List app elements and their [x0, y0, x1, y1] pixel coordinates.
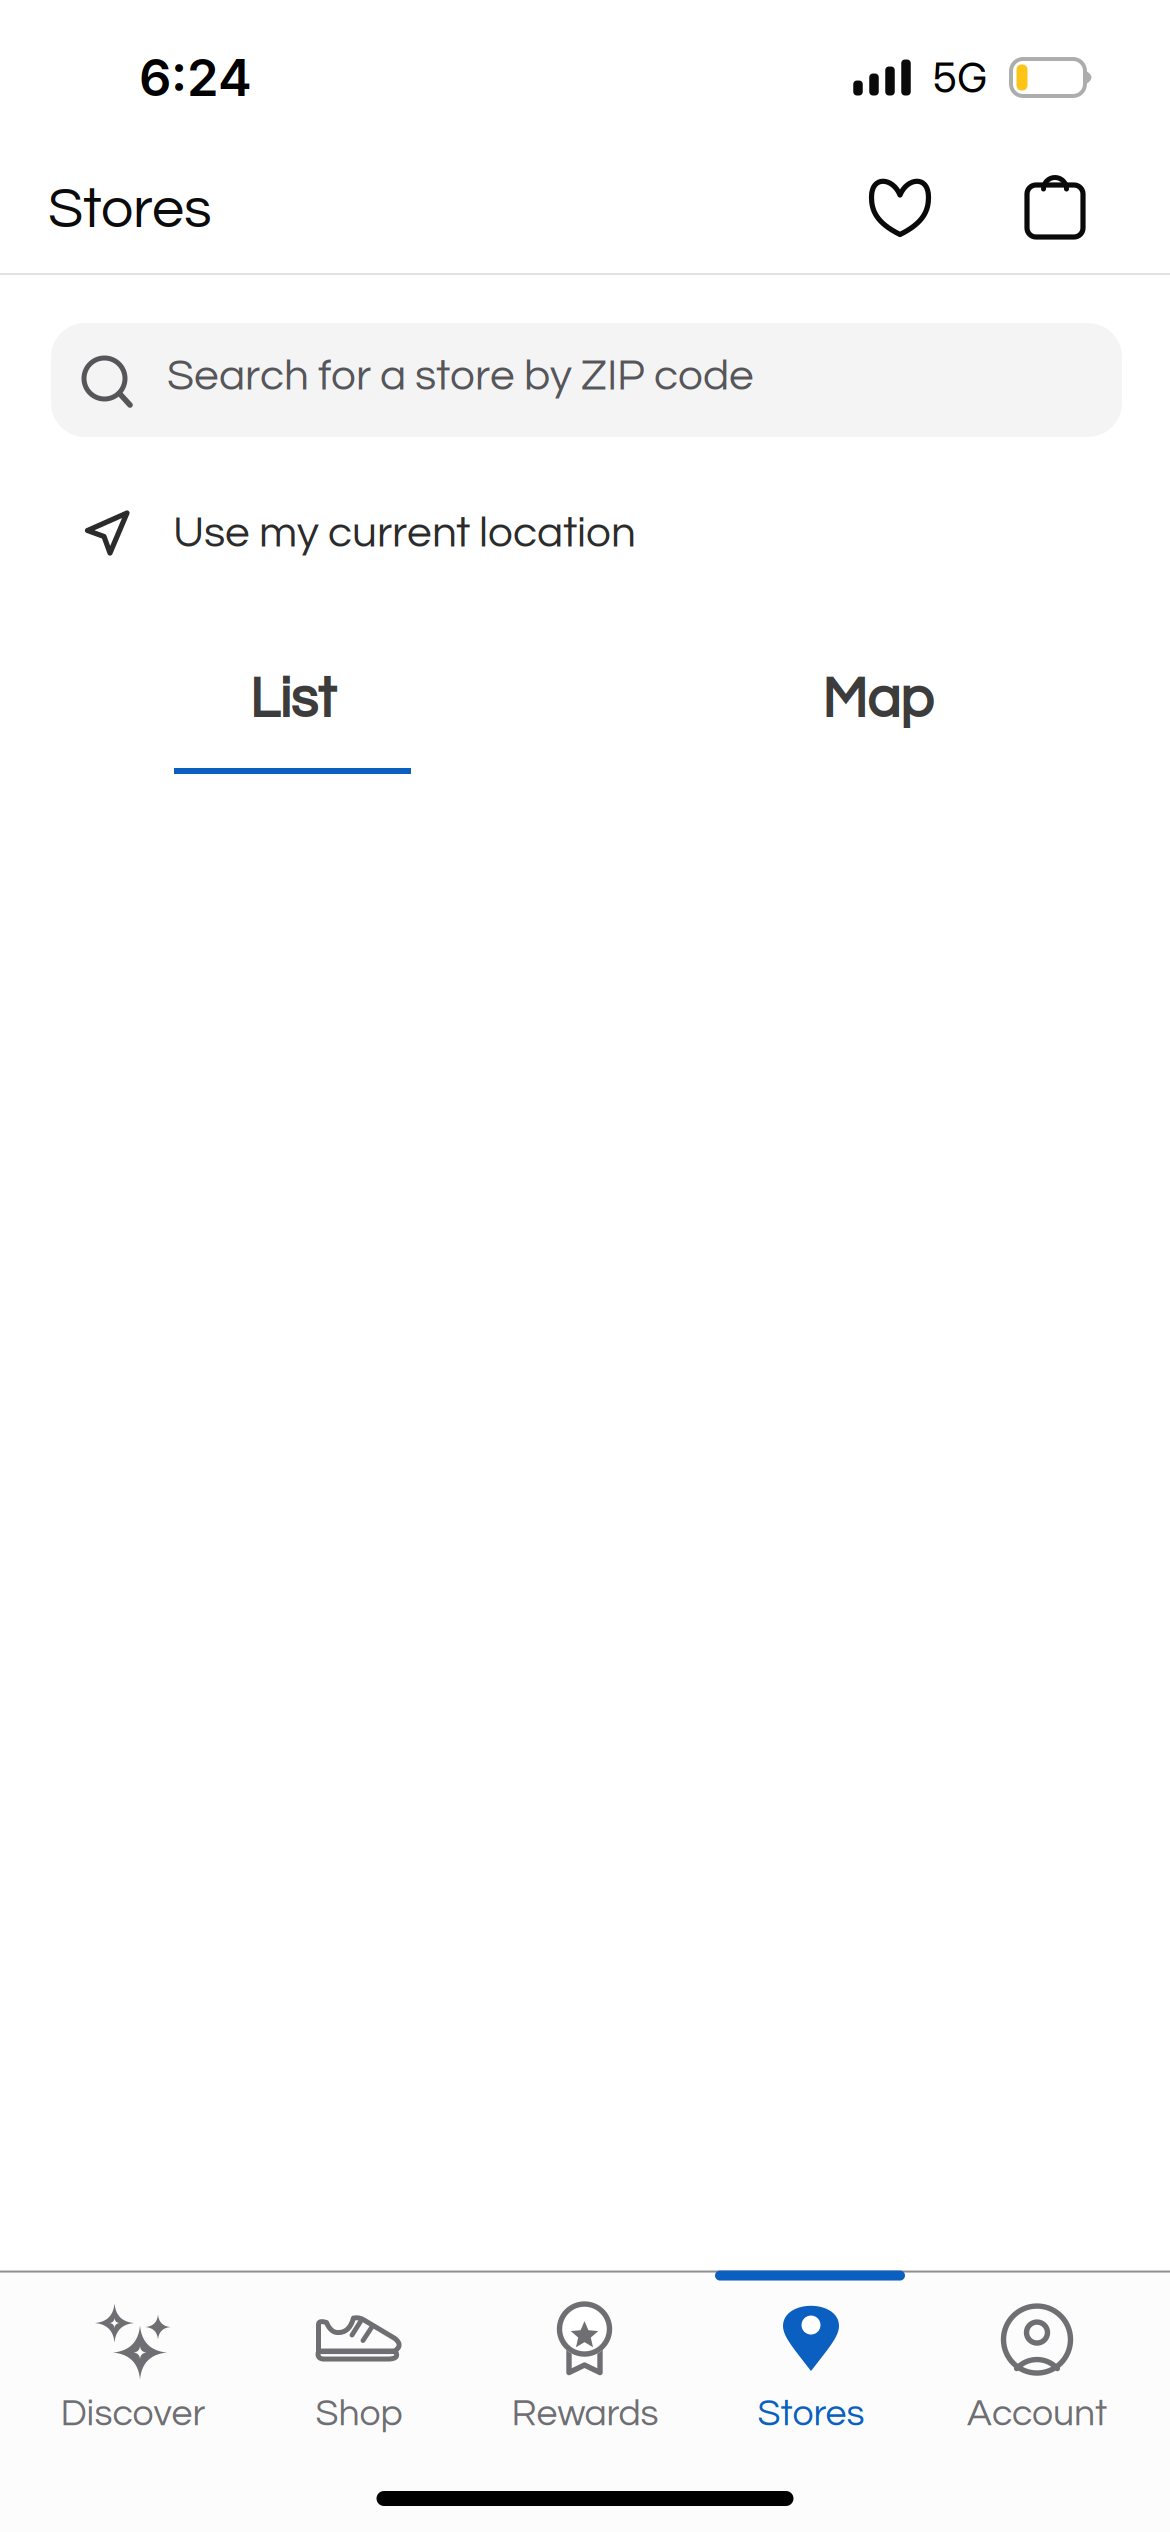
staticText: Use my current location: [173, 510, 636, 556]
staticText: Map: [822, 671, 933, 729]
staticText: List: [249, 671, 335, 729]
staticText: Account: [967, 2394, 1107, 2433]
staticText: Shop: [315, 2394, 402, 2433]
staticText: Discover: [60, 2394, 205, 2433]
staticText: Rewards: [511, 2394, 658, 2433]
staticText: 6:24: [139, 47, 252, 108]
staticText: 5G: [933, 52, 987, 102]
button[interactable]: Rewards: [472, 2280, 698, 2440]
button[interactable]: Bag: [992, 146, 1118, 282]
button[interactable]: Use my current location: [0, 467, 1170, 599]
button[interactable]: Account: [924, 2280, 1150, 2440]
button[interactable]: Discover: [20, 2280, 246, 2440]
button[interactable]: List: [0, 655, 585, 774]
staticText: Search for a store by ZIP code: [167, 353, 754, 399]
staticText: Stores: [48, 180, 212, 239]
button[interactable]: Favorites: [837, 149, 963, 279]
staticText: Stores: [757, 2394, 864, 2433]
button[interactable]: Stores: [698, 2280, 924, 2440]
button[interactable]: Search for a store by ZIP code: [51, 323, 1122, 437]
button[interactable]: Map: [585, 655, 1170, 774]
button[interactable]: Shop: [246, 2280, 472, 2440]
